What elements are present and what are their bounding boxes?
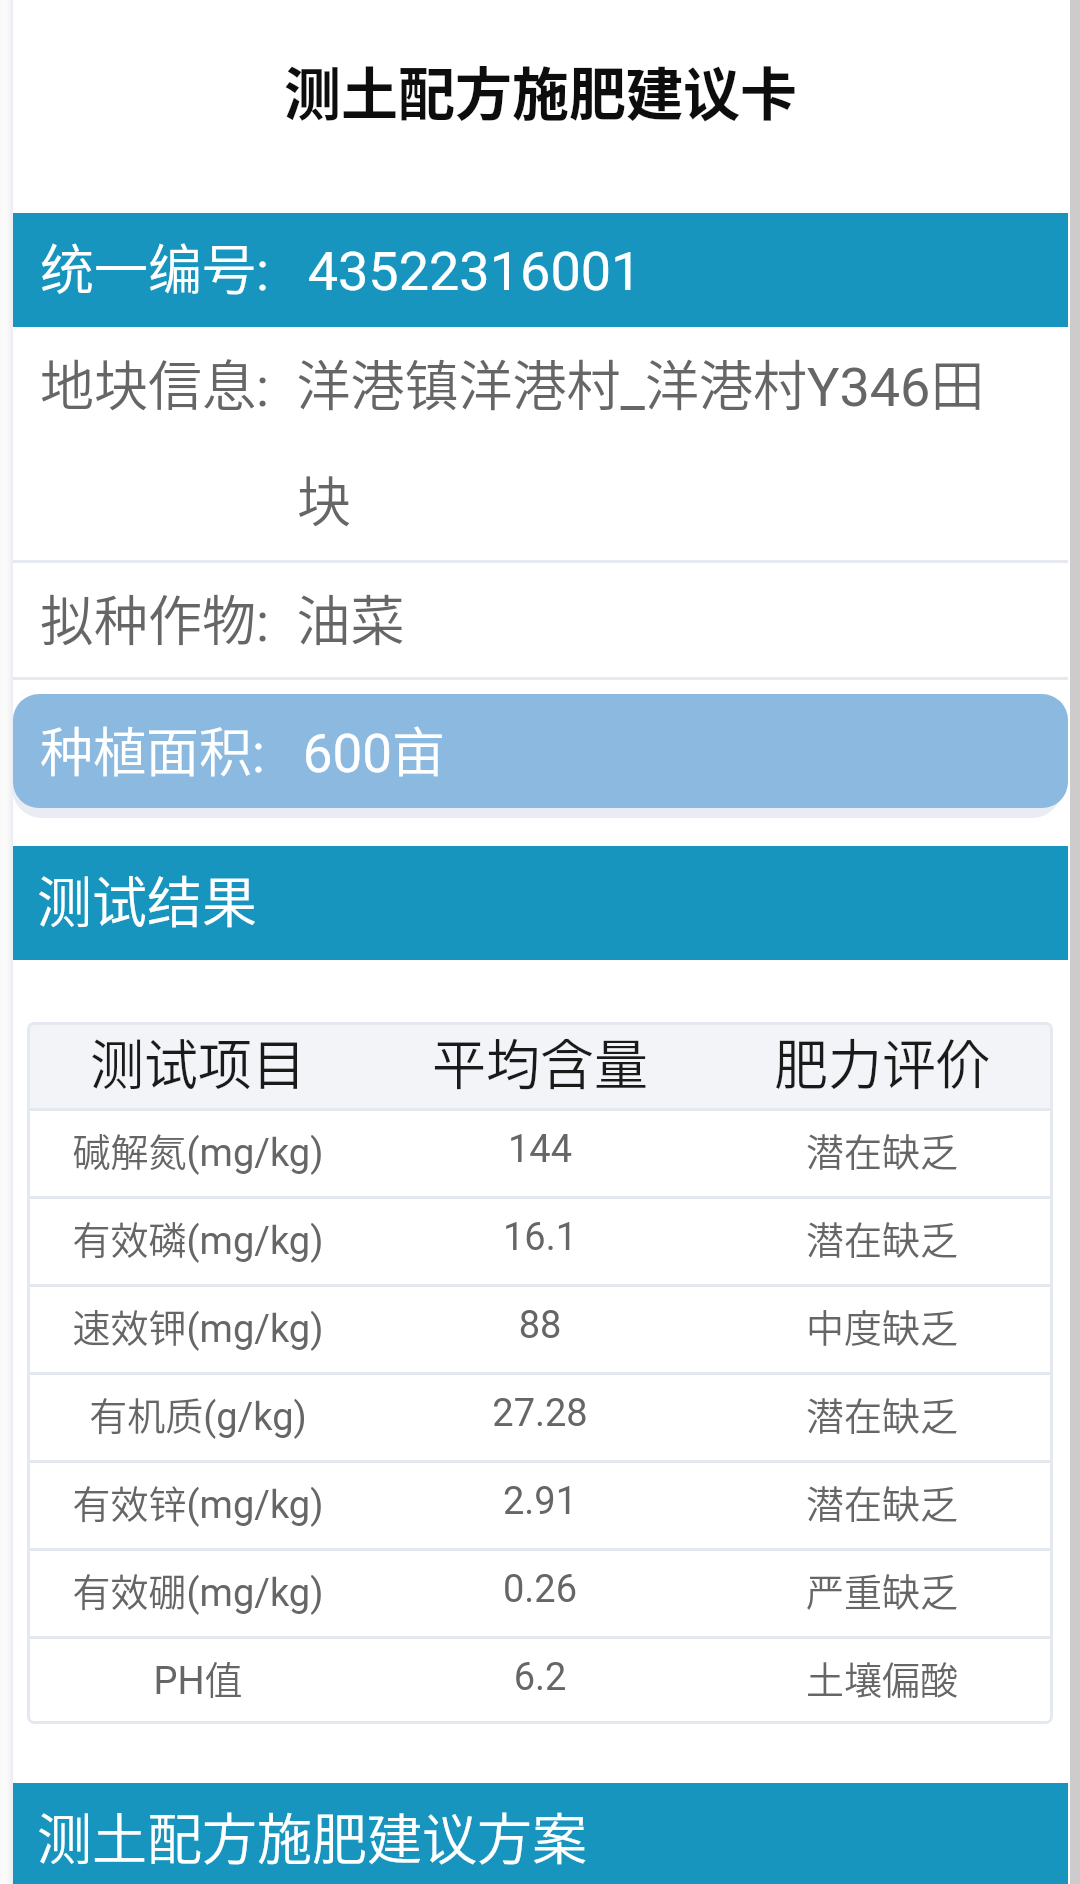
staticText: 统一编号: 43522316001 — [40, 227, 642, 305]
staticText: 拟种作物: 油菜 — [40, 578, 405, 656]
staticText: PH值 — [27, 1650, 369, 1705]
staticText: 有效锌(mg/kg) — [27, 1474, 369, 1529]
staticText: 潜在缺乏 — [711, 1210, 1053, 1265]
staticText: 平均含量 — [369, 1022, 711, 1100]
staticText: 潜在缺乏 — [711, 1386, 1053, 1441]
staticText: 6.2 — [369, 1655, 711, 1700]
staticText: 测土配方施肥建议卡 — [284, 49, 797, 132]
staticText: 16.1 — [369, 1215, 711, 1260]
staticText: 潜在缺乏 — [711, 1474, 1053, 1529]
staticText: 肥力评价 — [711, 1022, 1053, 1100]
staticText: 0.26 — [369, 1567, 711, 1612]
staticText: 土壤偏酸 — [711, 1650, 1053, 1705]
staticText: 碱解氮(mg/kg) — [27, 1122, 369, 1177]
staticText: 27.28 — [369, 1391, 711, 1436]
staticText: 2.91 — [369, 1479, 711, 1524]
staticText: 88 — [369, 1303, 711, 1348]
staticText: 种植面积: 600亩 — [40, 711, 446, 788]
staticText: 测土配方施肥建议方案 — [37, 1795, 588, 1875]
staticText: 有机质(g/kg) — [27, 1386, 369, 1441]
staticText: 潜在缺乏 — [711, 1122, 1053, 1177]
button[interactable]: 测土配方施肥建议方案 — [13, 1783, 1068, 1884]
staticText: 速效钾(mg/kg) — [27, 1298, 369, 1353]
staticText: 严重缺乏 — [711, 1562, 1053, 1617]
staticText: 块 — [297, 459, 351, 537]
button[interactable]: 统一编号: 43522316001 — [13, 213, 1068, 327]
staticText: 144 — [369, 1127, 711, 1172]
button[interactable]: 种植面积: 600亩 — [13, 694, 1068, 808]
staticText: 有效硼(mg/kg) — [27, 1562, 369, 1617]
staticText: 地块信息: 洋港镇洋港村_洋港村Y346田 — [40, 343, 985, 421]
staticText: 有效磷(mg/kg) — [27, 1210, 369, 1265]
staticText: 测试结果 — [37, 858, 258, 938]
staticText: 中度缺乏 — [711, 1298, 1053, 1353]
staticText: 测试项目 — [27, 1022, 369, 1100]
button[interactable]: 测试结果 — [13, 846, 1068, 960]
